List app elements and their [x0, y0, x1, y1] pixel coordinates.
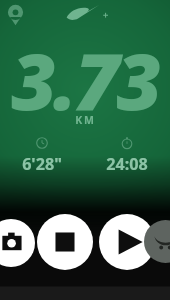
button[interactable]: Average pace	[14, 137, 70, 172]
staticText: KM	[75, 113, 96, 127]
button[interactable]: Elapsed time	[99, 137, 155, 172]
button[interactable]: Stop run	[37, 214, 93, 270]
staticText: 6'28"	[22, 153, 62, 172]
staticText: 24:08	[106, 153, 148, 172]
staticText: 3.73	[11, 26, 159, 133]
button[interactable]: Music	[144, 220, 170, 263]
button[interactable]: Camera	[0, 219, 35, 267]
button[interactable]: Resume run	[99, 214, 155, 270]
button[interactable]: GPS location	[6, 4, 25, 26]
